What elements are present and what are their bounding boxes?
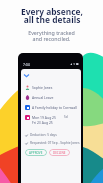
staticText: Everything tracked and reconciled.	[28, 29, 75, 42]
button[interactable]: DECLINE	[49, 149, 70, 156]
staticText: Fri 23 Aug 25	[32, 120, 53, 125]
staticText: DECLINE	[53, 151, 66, 155]
staticText: Every absence, all the details	[21, 6, 83, 25]
staticText: Sophie Jones	[32, 85, 53, 90]
staticText: Annual Leave	[32, 95, 54, 100]
staticText: 7:04	[23, 62, 30, 67]
button[interactable]: APPROVE	[25, 149, 47, 156]
staticText: APPROVE	[29, 151, 43, 155]
staticText: A Family holiday to Cornwall	[32, 105, 77, 110]
staticText: Requested: 07 Sep - Sophie Jones	[30, 141, 80, 145]
button[interactable]: Annual Leave	[25, 95, 54, 100]
staticText: Mon 19 Aug 25	[32, 115, 56, 120]
staticText: Deduction: 5 days	[30, 133, 57, 137]
button[interactable]: Collapse	[22, 71, 30, 79]
staticText: 5d	[64, 115, 68, 119]
button[interactable]: Sophie Jones	[25, 85, 53, 90]
button[interactable]: A Family holiday to Cornwall	[25, 105, 77, 110]
button[interactable]: Mon 19 Aug 25	[25, 115, 56, 125]
